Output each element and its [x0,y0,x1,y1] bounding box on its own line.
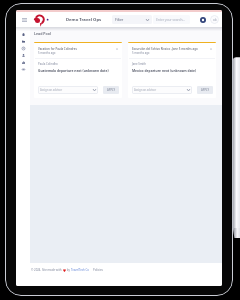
button[interactable]: Menu [20,15,29,24]
button[interactable]: Assign an advisor [38,86,98,94]
staticText: APPLY [107,88,115,92]
staticText: by [66,268,71,272]
staticText: APPLY [201,88,209,92]
staticText: ab [213,18,217,22]
button[interactable]: Profile [210,15,219,24]
staticText: Jane Smith [132,62,146,66]
button[interactable]: Enter your search... [153,15,190,24]
button[interactable]: Filter [112,15,152,24]
button[interactable]: More options [114,47,119,51]
button[interactable]: Chart [16,59,30,66]
staticText: Filter [115,17,124,22]
button[interactable]: Assign an advisor [132,86,192,94]
staticText: Assign an advisor [134,88,157,92]
staticText: Excursión del Schivo Rivsico -Jone 5 mon… [132,47,198,51]
staticText: TravelTech Co [71,268,89,272]
staticText: 5 months ago [38,51,56,55]
staticText: Mexico departure next (unknown date) [132,68,197,72]
button[interactable]: More options [208,47,213,51]
staticText: Enter your search... [156,18,185,22]
staticText: Paula Colindho [38,62,58,66]
staticText: Policies [93,268,103,272]
staticText: 5 months ago [132,51,150,55]
button[interactable]: Policies [93,268,103,272]
button[interactable]: Link [16,66,30,73]
staticText: Guatemala departure next (unknown date) [38,68,109,72]
button[interactable]: TravelTech Co [71,268,89,272]
staticText: Lead Pool [34,31,52,36]
button[interactable]: APPLY [103,86,119,94]
button[interactable]: Files [16,38,30,45]
button[interactable]: Excursión del Schivo Rivsico -Jone 5 mon… [128,42,216,98]
button[interactable]: Person [16,52,30,59]
button[interactable]: Vacation for Paula Colindres [34,42,122,98]
button[interactable]: Settings [198,15,207,24]
button[interactable]: Home [16,31,30,38]
button[interactable]: Clock [16,45,30,52]
staticText: Vacation for Paula Colindres [38,47,77,51]
staticText: © 2024. Site made with [31,268,63,272]
staticText: Assign an advisor [40,88,63,92]
button[interactable]: APPLY [197,86,213,94]
staticText: Demo Travel Ops [66,17,102,23]
